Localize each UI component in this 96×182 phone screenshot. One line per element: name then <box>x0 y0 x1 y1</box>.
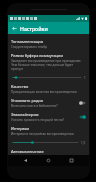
staticText: Автовыключение <box>11 149 44 153</box>
staticText: Режим буфера коммутации <box>11 53 63 58</box>
staticText: Включить поиск в библиотеке? <box>11 104 58 108</box>
staticText: Приоритизация качества воспроизведения <box>11 90 77 94</box>
button[interactable]: 1,5 <box>11 138 86 147</box>
button[interactable]: Интервал <box>11 124 86 138</box>
staticText: Качество <box>11 84 29 89</box>
button[interactable]: Режим буфера коммутации <box>11 51 86 73</box>
staticText: Настройки <box>20 25 48 32</box>
button[interactable]: 1 <box>11 73 86 82</box>
button[interactable]: Качество <box>11 82 86 96</box>
button[interactable]: Тонкомпенсация <box>11 37 86 51</box>
staticText: 1,5 <box>81 141 86 145</box>
button[interactable]: Упаковать радио <box>11 96 86 110</box>
button[interactable]: Эквалайзером <box>11 110 86 124</box>
button[interactable]: Автовыключение <box>11 147 86 155</box>
button[interactable]: Home <box>43 155 54 166</box>
button[interactable]: Back <box>8 22 20 34</box>
button[interactable]: Recent apps <box>66 155 77 166</box>
staticText: Скорректировать тембр <box>11 45 48 49</box>
button[interactable]: Back <box>20 155 31 166</box>
staticText: 1 <box>84 76 86 80</box>
staticText: Усилить громкость текущей песни? <box>11 118 64 122</box>
staticText: Упаковать радио <box>11 98 44 103</box>
staticText: Интервал в настройках воспроизведения <box>11 132 74 136</box>
staticText: Замедляет воспроизведение при пропадании… <box>11 59 86 71</box>
staticText: Тонкомпенсация <box>11 39 44 44</box>
staticText: Интервал <box>11 126 30 131</box>
staticText: Эквалайзером <box>11 112 39 117</box>
